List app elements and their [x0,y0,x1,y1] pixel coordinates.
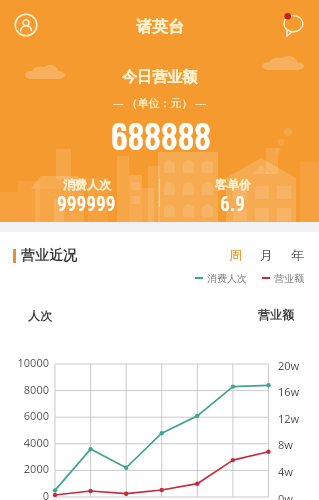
staticText: 营业近况 [21,247,77,265]
staticText: 20w [278,358,300,373]
staticText: 999999 [57,193,116,216]
button[interactable]: Profile [13,12,39,38]
staticText: 688888 [111,111,212,157]
staticText: 6.9 [220,193,246,216]
staticText: 客单价 [215,177,251,192]
button[interactable]: 月 [260,247,273,261]
staticText: 2000 [0,461,49,476]
staticText: 人次 [28,308,52,323]
staticText: 营业额 [274,272,304,284]
staticText: 月 [260,247,273,261]
staticText: 消费人次 [207,272,247,284]
staticText: 诸英台 [136,17,184,37]
staticText: 营业额 [258,307,294,322]
staticText: 消费人次 [63,177,111,192]
button[interactable]: 年 [291,247,304,261]
staticText: 6000 [0,408,49,423]
staticText: 周 [229,247,242,261]
button[interactable]: Messages [280,12,306,38]
staticText: 年 [291,247,304,261]
staticText: 16w [278,384,300,399]
staticText: 10000 [0,355,49,370]
staticText: 8000 [0,382,49,397]
staticText: --- （单位：元） --- [113,95,206,110]
staticText: 12w [278,411,300,426]
staticText: 0w [278,491,293,500]
staticText: 8w [278,437,293,452]
staticText: 今日营业额 [122,68,197,87]
staticText: 4w [278,464,293,479]
staticText: 4000 [0,435,49,450]
button[interactable]: 周 [229,247,242,261]
staticText: 0 [0,488,49,500]
